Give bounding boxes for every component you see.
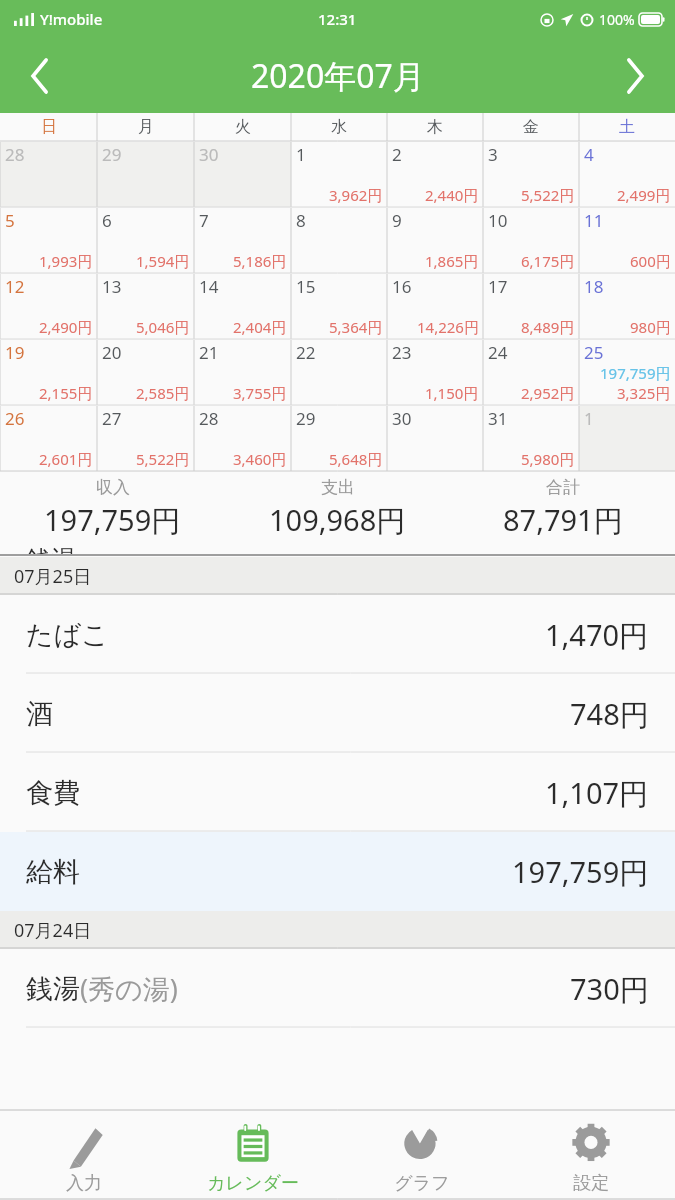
button[interactable]: 20 [97,340,194,405]
staticText: 07月25日 [14,564,92,589]
button[interactable]: 2 [387,142,483,207]
button[interactable]: 4 [579,142,675,207]
staticText: グラフ [394,1172,450,1195]
button[interactable]: 9 [387,208,483,273]
button[interactable]: 29 [291,406,387,471]
button[interactable]: 11 [579,208,675,273]
staticText: 14 [199,275,219,298]
staticText: 3,962円 [329,185,383,205]
staticText: 30 [199,143,219,166]
staticText: 3,325円 [617,383,671,403]
button[interactable]: 18 [579,274,675,339]
staticText: 17 [488,275,508,298]
staticText: 1 [296,143,306,166]
button[interactable]: 17 [483,274,579,339]
staticText: (秀の湯) [80,970,178,1007]
staticText: 入力 [66,1172,102,1195]
staticText: 197,759円 [512,852,649,892]
button[interactable]: 12 [0,274,97,339]
button[interactable]: 31 [483,406,579,471]
button[interactable]: 食費 [0,753,675,832]
button[interactable]: 入力 [0,1111,168,1199]
button[interactable]: 25 [579,340,675,405]
button[interactable]: 22 [291,340,387,405]
button[interactable]: 27 [97,406,194,471]
button[interactable]: 30 [387,406,483,471]
staticText: 9 [392,209,402,232]
staticText: 5,364円 [329,317,383,337]
button[interactable]: 16 [387,274,483,339]
staticText: 水 [331,117,347,137]
button[interactable]: 酒 [0,674,675,753]
staticText: 10 [488,209,508,232]
staticText: 食費 [26,776,80,810]
staticText: 月 [138,117,154,137]
staticText: 土 [619,117,635,137]
staticText: 12 [5,275,25,298]
staticText: 合計 [546,477,580,498]
button[interactable]: 21 [194,340,291,405]
button[interactable]: 28 [0,142,97,207]
staticText: 銭湯 [26,972,80,1006]
button[interactable]: 1 [291,142,387,207]
button[interactable]: 13 [97,274,194,339]
button[interactable]: 23 [387,340,483,405]
button[interactable]: グラフ [337,1111,506,1199]
staticText: たばこ [26,618,109,652]
staticText: 8,489円 [521,317,575,337]
staticText: 1,993円 [39,251,93,271]
button[interactable]: たばこ [0,595,675,674]
button[interactable]: 07月24日 [0,911,675,949]
button[interactable]: Next month [595,38,675,113]
button[interactable]: 07月25日 [0,557,675,595]
button[interactable]: 28 [194,406,291,471]
staticText: 23 [392,341,412,364]
staticText: 6,175円 [521,251,575,271]
staticText: 7 [199,209,209,232]
button[interactable]: 24 [483,340,579,405]
button[interactable]: 設定 [506,1111,675,1199]
staticText: 5,186円 [233,251,287,271]
button[interactable]: 29 [97,142,194,207]
staticText: 28 [199,407,219,430]
button[interactable]: Previous month [0,38,80,113]
staticText: 20 [102,341,122,364]
button[interactable]: 19 [0,340,97,405]
staticText: 730円 [570,969,649,1009]
button[interactable]: 26 [0,406,97,471]
button[interactable]: 銭湯 [0,949,675,1028]
button[interactable]: 収入 [0,472,225,544]
staticText: 2 [392,143,402,166]
staticText: 設定 [573,1172,609,1195]
button[interactable]: 3 [483,142,579,207]
staticText: 87,791円 [503,500,623,540]
button[interactable]: 10 [483,208,579,273]
button[interactable]: 7 [194,208,291,273]
staticText: 給料 [26,855,80,889]
staticText: 火 [235,117,251,137]
staticText: 金 [523,117,539,137]
button[interactable]: 6 [97,208,194,273]
staticText: 4 [584,143,594,166]
button[interactable]: 15 [291,274,387,339]
button[interactable]: 給料 [0,832,675,911]
button[interactable]: 30 [194,142,291,207]
staticText: 31 [488,407,508,430]
button[interactable]: 合計 [450,472,675,544]
button[interactable]: カレンダー [168,1111,337,1199]
button[interactable]: 14 [194,274,291,339]
staticText: 109,968円 [269,500,406,540]
staticText: 5,046円 [136,317,190,337]
staticText: 197,759円 [44,500,181,540]
staticText: 197,759円 [600,363,671,383]
staticText: 5,522円 [521,185,575,205]
staticText: 2,490円 [39,317,93,337]
staticText: 1,107円 [545,773,649,813]
staticText: 1,150円 [425,383,479,403]
button[interactable]: 5 [0,208,97,273]
button[interactable]: 1 [579,406,675,471]
button[interactable]: 8 [291,208,387,273]
staticText: カレンダー [207,1172,299,1195]
staticText: 16 [392,275,412,298]
button[interactable]: 支出 [225,472,450,544]
